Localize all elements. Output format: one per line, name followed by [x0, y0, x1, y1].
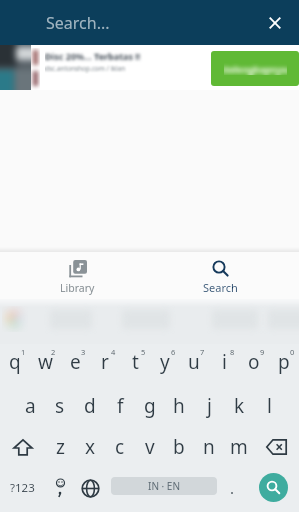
- button[interactable]: [45, 470, 75, 512]
- staticText: t: [132, 349, 139, 375]
- button[interactable]: y: [150, 344, 180, 386]
- button[interactable]: m: [224, 428, 254, 470]
- button[interactable]: b: [164, 428, 194, 470]
- staticText: g: [144, 393, 156, 419]
- staticText: r: [101, 349, 109, 375]
- button[interactable]: w: [30, 344, 60, 386]
- button[interactable]: i: [209, 344, 239, 386]
- button[interactable]: [0, 428, 45, 470]
- button[interactable]: Disc 20%... Terbatas !!: [0, 45, 299, 90]
- button[interactable]: Library: [0, 252, 150, 299]
- staticText: a: [25, 393, 36, 419]
- staticText: IN · EN: [148, 479, 181, 493]
- button[interactable]: Search: [150, 252, 299, 299]
- staticText: z: [56, 434, 65, 460]
- button[interactable]: d: [75, 386, 105, 428]
- staticText: 7: [200, 347, 205, 357]
- staticText: Selengkapnya: [224, 63, 287, 75]
- staticText: k: [234, 393, 245, 419]
- button[interactable]: j: [194, 386, 224, 428]
- staticText: y: [160, 349, 170, 375]
- button[interactable]: z: [45, 428, 75, 470]
- button[interactable]: e: [60, 344, 90, 386]
- staticText: 5: [141, 347, 146, 357]
- button[interactable]: Search...: [36, 0, 246, 45]
- button[interactable]: f: [105, 386, 135, 428]
- button[interactable]: Selengkapnya: [211, 51, 299, 86]
- button[interactable]: a: [15, 386, 45, 428]
- button[interactable]: o: [239, 344, 269, 386]
- staticText: o: [248, 349, 260, 375]
- staticText: n: [203, 434, 215, 460]
- button[interactable]: [261, 9, 289, 37]
- button[interactable]: IN · EN: [111, 477, 217, 495]
- button[interactable]: k: [224, 386, 254, 428]
- button[interactable]: v: [135, 428, 165, 470]
- staticText: Library: [60, 281, 95, 295]
- staticText: q: [9, 349, 21, 375]
- staticText: i: [222, 349, 227, 375]
- staticText: f: [117, 393, 124, 419]
- button[interactable]: ?123: [0, 470, 45, 512]
- staticText: d: [84, 393, 96, 419]
- staticText: j: [207, 393, 212, 419]
- button[interactable]: c: [105, 428, 135, 470]
- staticText: 3: [81, 347, 86, 357]
- button[interactable]: s: [45, 386, 75, 428]
- button[interactable]: g: [135, 386, 165, 428]
- staticText: 4: [111, 347, 116, 357]
- button[interactable]: .: [216, 470, 248, 512]
- staticText: Search: [203, 280, 238, 295]
- button[interactable]: x: [75, 428, 105, 470]
- staticText: e: [70, 349, 81, 375]
- button[interactable]: [75, 470, 105, 512]
- staticText: .: [230, 478, 235, 498]
- button[interactable]: l: [254, 386, 284, 428]
- button[interactable]: r: [90, 344, 120, 386]
- staticText: h: [173, 393, 185, 419]
- button[interactable]: u: [179, 344, 209, 386]
- staticText: s: [55, 393, 65, 419]
- staticText: 6: [171, 347, 176, 357]
- button[interactable]: n: [194, 428, 224, 470]
- staticText: 9: [260, 347, 265, 357]
- staticText: 1: [21, 347, 26, 357]
- staticText: v: [145, 434, 155, 460]
- staticText: Search...: [46, 12, 110, 34]
- staticText: u: [188, 349, 200, 375]
- staticText: 8: [230, 347, 235, 357]
- staticText: 0: [290, 347, 295, 357]
- staticText: x: [85, 434, 96, 460]
- button[interactable]: q: [0, 344, 30, 386]
- button[interactable]: h: [164, 386, 194, 428]
- button[interactable]: [259, 473, 288, 502]
- button[interactable]: t: [120, 344, 150, 386]
- staticText: l: [267, 393, 272, 419]
- staticText: m: [230, 434, 248, 460]
- staticText: 2: [51, 347, 56, 357]
- staticText: c: [115, 434, 125, 460]
- staticText: p: [278, 349, 290, 375]
- staticText: b: [173, 434, 185, 460]
- button[interactable]: p: [269, 344, 299, 386]
- staticText: ?123: [10, 480, 35, 496]
- staticText: w: [38, 349, 53, 375]
- staticText: dsc.antonshop.com / iklan: [45, 64, 126, 73]
- button[interactable]: [254, 428, 299, 470]
- staticText: Disc 20%... Terbatas !!: [45, 50, 141, 62]
